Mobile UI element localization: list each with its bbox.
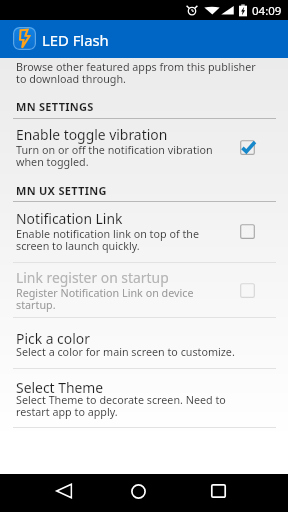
staticText: Turn on or off the notification vibratio…	[16, 144, 213, 168]
staticText: MN SETTINGS	[16, 99, 94, 114]
staticText: Pick a color	[16, 329, 90, 348]
staticText: MN UX SETTING	[16, 183, 107, 198]
button[interactable]: Recent apps	[199, 472, 237, 510]
button[interactable]	[0, 263, 288, 318]
staticText: Register Notification Link on device sta…	[16, 287, 194, 311]
staticText: Select Theme to decorate screen. Need to…	[16, 394, 226, 418]
button[interactable]	[0, 202, 288, 262]
staticText: LED Flash	[42, 30, 109, 50]
staticText: Browse other featured apps from this pub…	[16, 61, 288, 85]
button[interactable]	[0, 318, 288, 367]
staticText: Select Theme	[16, 378, 104, 397]
button[interactable]: Home	[119, 472, 157, 510]
button[interactable]: App icon	[13, 27, 36, 50]
staticText: Enable toggle vibration	[16, 125, 168, 144]
button[interactable]	[0, 369, 288, 427]
staticText: 04:09	[252, 3, 282, 19]
staticText: Link register on startup	[16, 268, 169, 287]
button[interactable]: Back	[45, 472, 83, 510]
staticText: Enable notification link on top of the s…	[16, 228, 199, 252]
button[interactable]	[0, 119, 288, 178]
staticText: Notification Link	[16, 209, 123, 228]
staticText: Select a color for main screen to custom…	[16, 346, 235, 358]
